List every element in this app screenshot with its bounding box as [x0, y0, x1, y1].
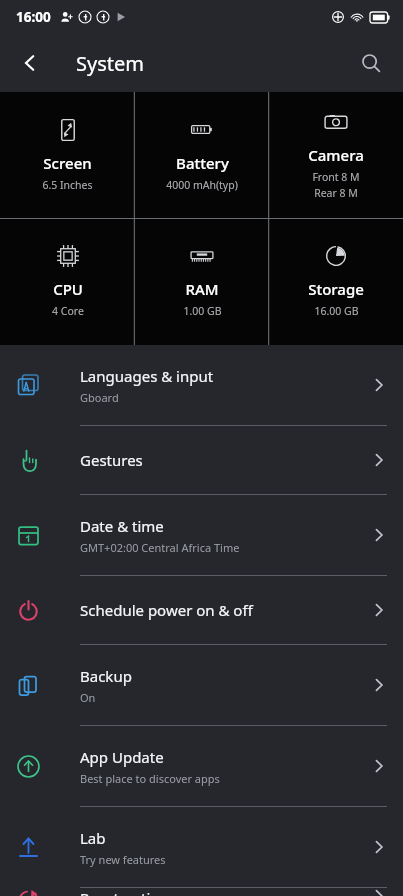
staticText: Gestures — [80, 450, 143, 470]
staticText: 16:00 — [16, 8, 51, 26]
staticText: Front 8 M — [312, 170, 360, 184]
button[interactable]: App Update — [0, 726, 403, 806]
staticText: GMT+02:00 Central Africa Time — [80, 540, 240, 555]
staticText: Camera — [308, 145, 364, 165]
button[interactable]: Languages & input — [0, 345, 403, 425]
button[interactable]: Back — [8, 41, 52, 85]
staticText: 16.00 GB — [314, 304, 359, 318]
button[interactable]: Date & time — [0, 495, 403, 575]
staticText: Screen — [43, 153, 92, 173]
staticText: Reset options — [80, 888, 176, 896]
button[interactable]: Gestures — [0, 426, 403, 494]
staticText: Gboard — [80, 390, 119, 405]
staticText: 4 Core — [52, 304, 84, 318]
staticText: System — [76, 50, 144, 77]
staticText: Rear 8 M — [314, 186, 358, 200]
staticText: Schedule power on & off — [80, 600, 253, 620]
button[interactable]: Camera — [269, 92, 403, 218]
staticText: On — [80, 690, 96, 705]
staticText: Date & time — [80, 516, 164, 536]
button[interactable]: Screen — [0, 92, 135, 218]
button[interactable]: CPU — [0, 218, 135, 345]
staticText: Try new features — [80, 852, 166, 867]
staticText: App Update — [80, 747, 164, 767]
button[interactable]: Lab — [0, 807, 403, 887]
staticText: Lab — [80, 828, 106, 848]
staticText: RAM — [185, 279, 219, 299]
button[interactable]: Storage — [269, 218, 403, 345]
staticText: Storage — [308, 279, 364, 299]
staticText: 1.00 GB — [183, 304, 222, 318]
staticText: CPU — [53, 279, 83, 299]
staticText: Languages & input — [80, 366, 214, 386]
button[interactable]: Reset options — [0, 888, 403, 896]
button[interactable]: Schedule power on & off — [0, 576, 403, 644]
staticText: Backup — [80, 666, 132, 686]
button[interactable]: Backup — [0, 645, 403, 725]
staticText: 4000 mAh(typ) — [166, 178, 238, 192]
staticText: Battery — [176, 153, 229, 173]
button[interactable]: Battery — [135, 92, 269, 218]
staticText: Best place to discover apps — [80, 771, 220, 786]
button[interactable]: RAM — [135, 218, 269, 345]
staticText: 6.5 Inches — [42, 178, 93, 192]
button[interactable]: Search — [349, 41, 393, 85]
